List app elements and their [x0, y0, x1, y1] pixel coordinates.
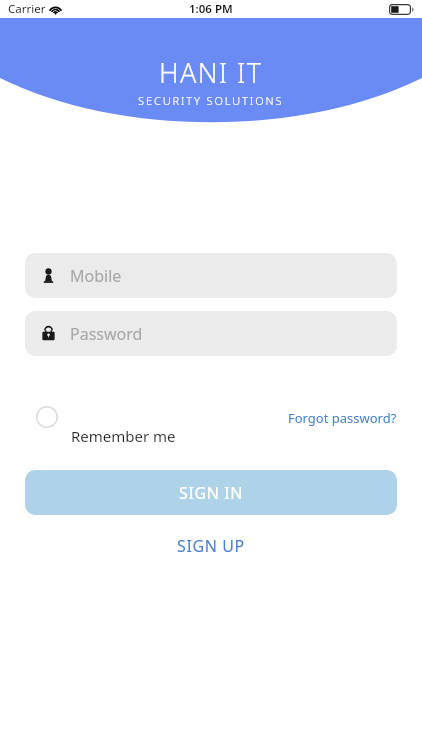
button[interactable]: Remember me checkbox [36, 406, 58, 428]
staticText: HANI IT [159, 54, 263, 91]
staticText: SIGN UP [177, 535, 245, 557]
staticText: Forgot password? [288, 409, 397, 427]
button[interactable]: Password [25, 311, 397, 356]
button[interactable]: Forgot password? [288, 409, 397, 427]
button[interactable]: SIGN IN [25, 470, 397, 515]
staticText: Remember me [71, 426, 176, 446]
staticText: SIGN IN [179, 482, 243, 504]
staticText: Carrier [8, 1, 46, 17]
button[interactable]: Mobile [25, 253, 397, 298]
staticText: Mobile [70, 265, 122, 287]
staticText: Password [70, 323, 143, 345]
staticText: 1:06 PM [189, 1, 233, 17]
button[interactable]: SIGN UP [173, 531, 249, 561]
staticText: SECURITY SOLUTIONS [138, 93, 284, 108]
button[interactable]: Remember me [71, 426, 176, 446]
